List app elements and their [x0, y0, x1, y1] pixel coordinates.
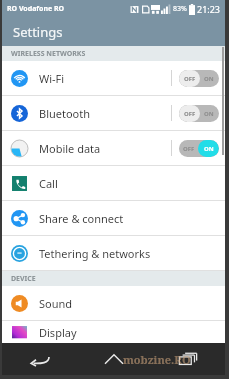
button[interactable]: Call — [2, 166, 225, 200]
staticText: OFF — [183, 145, 195, 153]
staticText: ON — [204, 145, 214, 153]
staticText: 83% — [173, 4, 187, 14]
button[interactable]: Off — [179, 105, 219, 122]
staticText: OFF — [183, 75, 195, 83]
staticText: Display — [39, 325, 77, 340]
staticText: OFF — [183, 110, 195, 118]
staticText: Wi-Fi — [39, 71, 65, 86]
staticText: DEVICE — [11, 274, 36, 284]
button[interactable]: Recent apps — [151, 343, 225, 375]
staticText: Mobile data — [39, 141, 101, 156]
staticText: Share & connect — [39, 211, 124, 226]
staticText: 21:23 — [197, 3, 221, 15]
button[interactable]: Home — [77, 343, 151, 375]
staticText: OFF — [184, 110, 196, 118]
button[interactable]: Share & connect — [2, 201, 225, 235]
staticText: Settings — [13, 23, 63, 41]
button[interactable]: Back — [2, 343, 77, 375]
staticText: RO Vodafone RO — [7, 4, 65, 14]
staticText: Call — [39, 176, 58, 191]
staticText: ON — [204, 75, 214, 83]
button[interactable]: Off — [179, 70, 219, 87]
button[interactable]: Bluetooth — [2, 96, 225, 130]
staticText: Sound — [39, 296, 73, 311]
button[interactable]: Mobile data — [2, 131, 225, 165]
button[interactable]: Sound — [2, 286, 225, 320]
staticText: OFF — [184, 75, 196, 83]
button[interactable]: On — [179, 140, 219, 157]
staticText: WIRELESS NETWORKS — [11, 49, 86, 59]
staticText: Tethering & networks — [39, 246, 151, 261]
button[interactable]: Wi-Fi — [2, 61, 225, 95]
button[interactable]: Display — [2, 321, 225, 343]
staticText: mobzine.RO — [123, 352, 191, 367]
staticText: ON — [204, 145, 214, 153]
staticText: ON — [204, 110, 214, 118]
button[interactable]: Tethering & networks — [2, 236, 225, 270]
staticText: Bluetooth — [39, 106, 91, 121]
